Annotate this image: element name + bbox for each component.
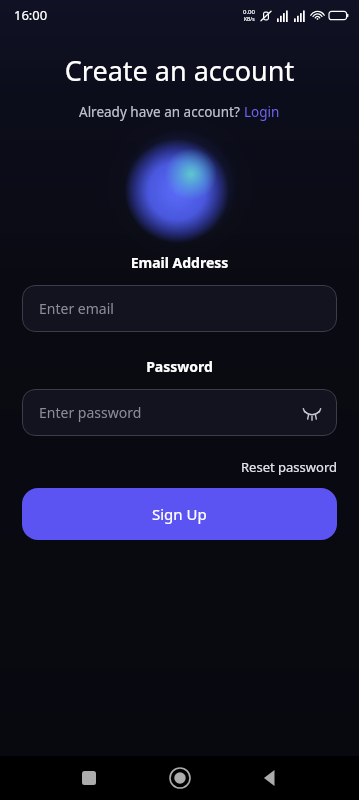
button[interactable]: Show password [299,400,325,426]
button[interactable]: Home [163,761,197,795]
staticText: Sign Up [152,504,207,524]
staticText: Create an account [0,52,359,89]
staticText: Login [244,103,280,121]
button[interactable]: Sign Up [22,488,337,540]
staticText: 0.00 [243,8,255,16]
staticText: Enter password [39,403,142,422]
staticText: Reset password [241,458,337,476]
button[interactable]: Back [253,761,287,795]
staticText: Already have an account? [79,103,244,121]
button[interactable]: Login [244,103,280,121]
staticText: KB/s [244,16,255,23]
button[interactable]: Enter password [22,389,337,436]
button[interactable]: Reset password [241,456,337,478]
button[interactable]: Enter email [22,285,337,332]
staticText: Password [0,357,359,376]
staticText: Email Address [0,253,359,272]
staticText: 16:00 [14,6,48,24]
button[interactable]: Recent apps [72,761,106,795]
staticText: Enter email [39,299,114,318]
